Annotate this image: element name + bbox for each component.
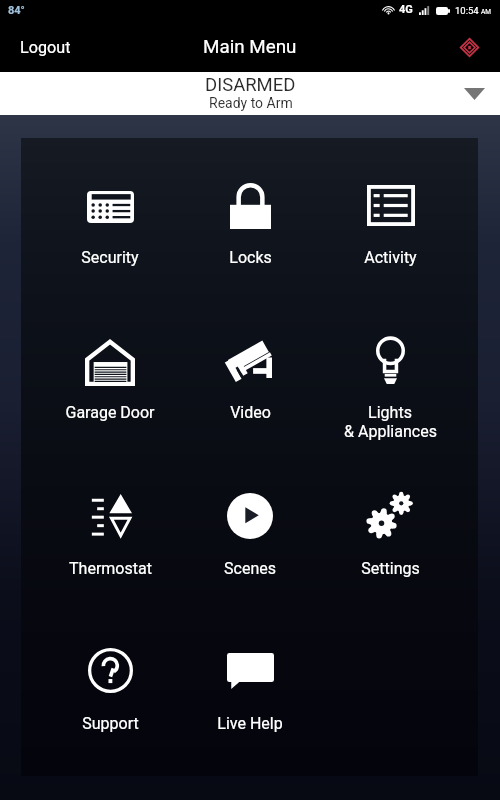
staticText: 4G: [399, 3, 413, 16]
button[interactable]: Garage Door: [40, 326, 180, 428]
button[interactable]: Lights: [320, 326, 460, 428]
button[interactable]: Scenes: [180, 481, 320, 583]
button[interactable]: Activity: [320, 171, 460, 273]
staticText: Lights: [368, 403, 412, 422]
button[interactable]: Support: [40, 635, 180, 737]
button[interactable]: Settings: [320, 481, 460, 583]
staticText: Video: [230, 403, 271, 422]
staticText: Logout: [20, 38, 71, 57]
staticText: Live Help: [217, 714, 283, 733]
staticText: 10:54: [455, 5, 479, 16]
button[interactable]: Locks: [180, 171, 320, 273]
staticText: Support: [82, 714, 139, 733]
button[interactable]: Thermostat: [40, 481, 180, 583]
staticText: Scenes: [224, 559, 276, 578]
button[interactable]: Video: [180, 326, 320, 428]
staticText: Thermostat: [69, 559, 152, 578]
staticText: DISARMED: [205, 74, 296, 96]
staticText: Garage Door: [65, 403, 155, 422]
staticText: Security: [81, 248, 139, 267]
staticText: 84°: [8, 4, 25, 17]
staticText: AM: [481, 8, 491, 16]
staticText: & Appliances: [344, 422, 437, 441]
button[interactable]: Logout: [0, 26, 91, 69]
staticText: Settings: [361, 559, 420, 578]
button[interactable]: Security: [40, 171, 180, 273]
button[interactable]: Live Help: [180, 635, 320, 737]
button[interactable]: DISARMED: [0, 72, 500, 115]
staticText: Ready to Arm: [209, 95, 293, 111]
staticText: Locks: [229, 248, 272, 267]
button[interactable]: Panic alarm: [449, 25, 500, 69]
staticText: Activity: [364, 248, 417, 267]
staticText: Main Menu: [203, 36, 297, 58]
